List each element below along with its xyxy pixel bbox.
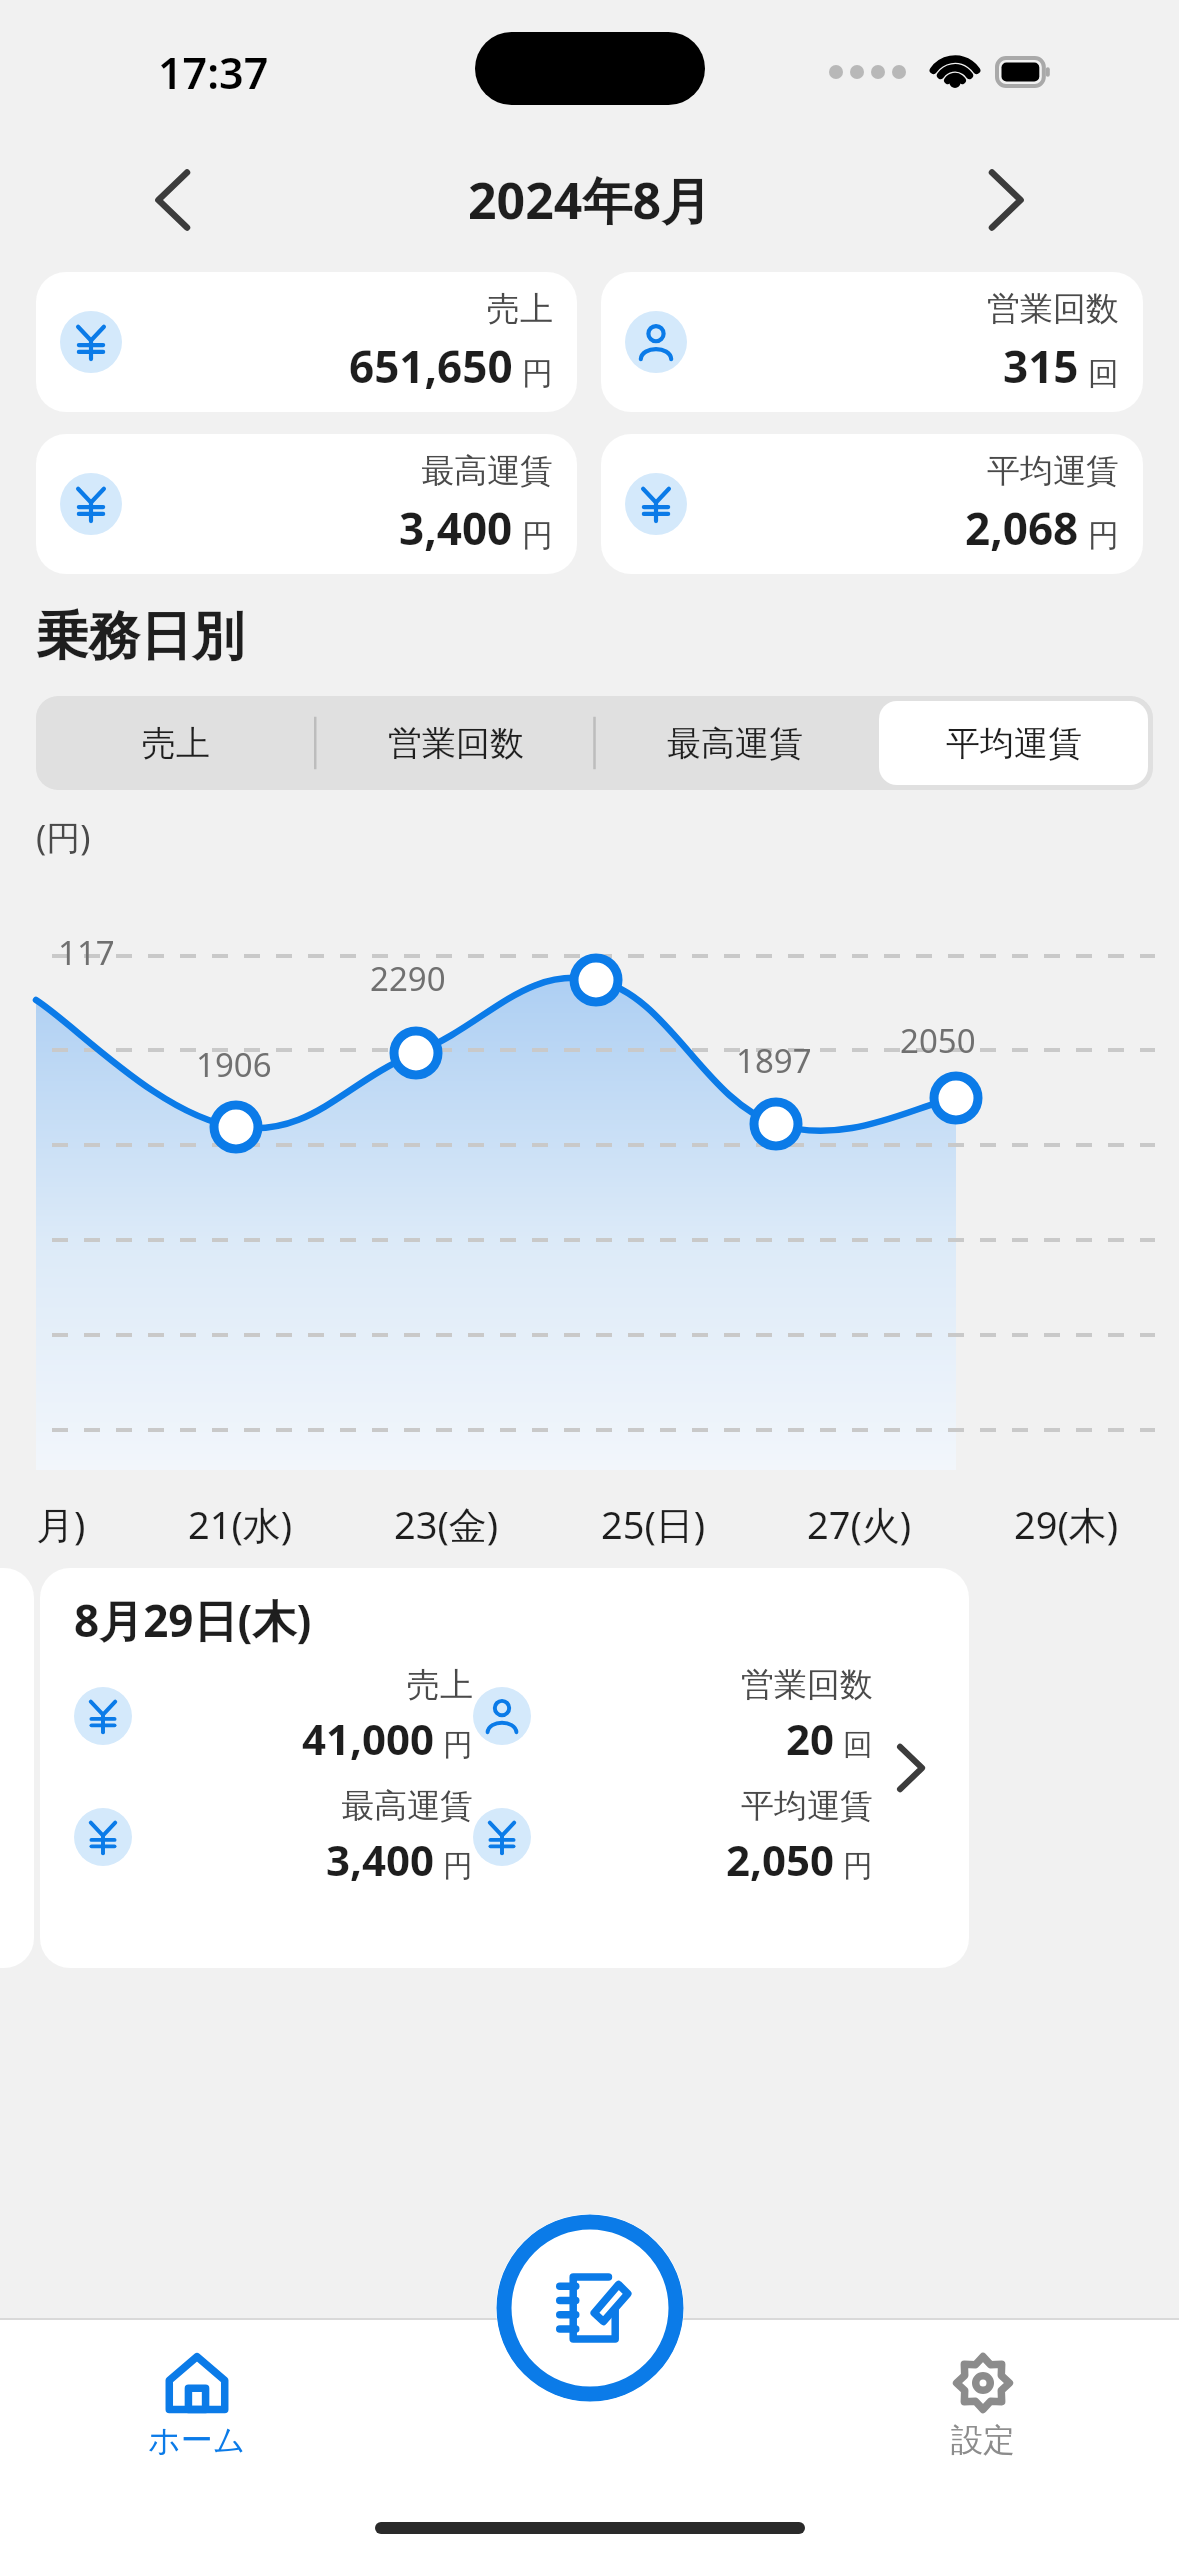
- staticText: 円: [443, 1847, 473, 1885]
- staticText: 315: [1003, 336, 1079, 396]
- button[interactable]: 8月29日(木): [40, 1568, 969, 1968]
- staticText: 1897: [736, 1038, 812, 1083]
- button[interactable]: 平均運賃: [601, 434, 1143, 574]
- staticText: 3,400: [326, 1831, 435, 1888]
- staticText: 2,050: [726, 1831, 835, 1888]
- staticText: 最高運賃: [421, 450, 553, 492]
- staticText: (円): [36, 814, 91, 860]
- staticText: 29(木): [1014, 1498, 1119, 1550]
- staticText: 21(水): [188, 1498, 293, 1550]
- staticText: 最高運賃: [667, 722, 803, 765]
- staticText: ホーム: [148, 2420, 246, 2460]
- staticText: 1906: [196, 1042, 272, 1087]
- staticText: 円: [1088, 516, 1119, 555]
- staticText: 2290: [370, 956, 446, 1001]
- staticText: 2050: [900, 1018, 976, 1063]
- staticText: 平均運賃: [946, 722, 1082, 765]
- button[interactable]: 設定: [786, 2346, 1179, 2464]
- staticText: 売上: [142, 722, 210, 765]
- staticText: 20: [786, 1710, 835, 1767]
- staticText: 円: [843, 1847, 873, 1885]
- staticText: 乗務日別: [36, 604, 244, 670]
- staticText: 25(日): [601, 1498, 706, 1550]
- staticText: 8月29日(木): [74, 1590, 312, 1650]
- button[interactable]: 次の月: [969, 155, 1059, 245]
- button[interactable]: 売上: [36, 272, 577, 412]
- staticText: 41,000: [302, 1710, 435, 1767]
- staticText: 営業回数: [388, 722, 524, 765]
- staticText: 平均運賃: [741, 1785, 873, 1827]
- staticText: 円: [443, 1726, 473, 1764]
- staticText: 営業回数: [987, 288, 1119, 330]
- staticText: 回: [1088, 354, 1119, 393]
- button[interactable]: 前の月: [120, 155, 210, 245]
- button[interactable]: 営業回数: [321, 701, 590, 785]
- staticText: 回: [843, 1726, 873, 1764]
- staticText: 27(火): [807, 1498, 912, 1550]
- button[interactable]: 営業回数: [601, 272, 1143, 412]
- staticText: 売上: [487, 288, 553, 330]
- button[interactable]: 売上: [41, 701, 311, 785]
- staticText: 売上: [407, 1664, 473, 1706]
- staticText: 平均運賃: [987, 450, 1119, 492]
- staticText: 円: [522, 354, 553, 393]
- staticText: 設定: [951, 2420, 1015, 2460]
- staticText: 円: [522, 516, 553, 555]
- button[interactable]: ホーム: [0, 2346, 393, 2464]
- staticText: 23(金): [394, 1498, 499, 1550]
- staticText: 651,650: [349, 336, 513, 396]
- staticText: 3,400: [399, 498, 513, 558]
- staticText: 2024年8月: [468, 166, 711, 234]
- staticText: 117: [58, 930, 115, 975]
- button[interactable]: 平均運賃: [879, 701, 1148, 785]
- button[interactable]: 新規作成: [496, 2214, 684, 2402]
- staticText: 2,068: [965, 498, 1079, 558]
- staticText: 営業回数: [741, 1664, 873, 1706]
- button[interactable]: 最高運賃: [600, 701, 869, 785]
- staticText: 17:37: [158, 43, 269, 102]
- button[interactable]: 最高運賃: [36, 434, 577, 574]
- staticText: 最高運賃: [341, 1785, 473, 1827]
- staticText: 月): [36, 1498, 86, 1550]
